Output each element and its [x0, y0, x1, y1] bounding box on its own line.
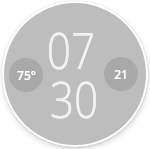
- staticText: 07: [7, 16, 135, 84]
- staticText: 30: [10, 65, 138, 133]
- button[interactable]: 75°: [9, 58, 43, 92]
- staticText: 21: [114, 66, 128, 82]
- button[interactable]: 21: [104, 57, 138, 91]
- button[interactable]: [4, 3, 146, 145]
- staticText: 75°: [17, 67, 36, 83]
